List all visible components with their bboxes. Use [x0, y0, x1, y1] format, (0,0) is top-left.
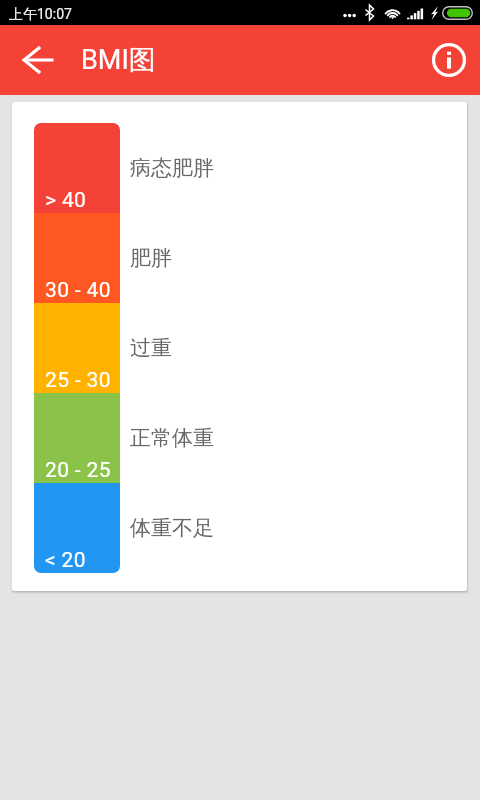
staticText: 上午10:07	[9, 6, 72, 24]
staticText: 20 - 25	[45, 458, 111, 483]
staticText: 肥胖	[130, 245, 172, 271]
staticText: 病态肥胖	[130, 155, 214, 181]
staticText: BMI图	[81, 43, 156, 77]
staticText: 过重	[130, 335, 172, 361]
staticText: 正常体重	[130, 425, 214, 451]
staticText: < 20	[45, 548, 86, 573]
staticText: 30 - 40	[45, 278, 111, 303]
button[interactable]: Back	[6, 31, 72, 89]
staticText: 25 - 30	[45, 368, 111, 393]
button[interactable]: Info	[425, 32, 473, 88]
staticText: > 40	[45, 188, 87, 213]
staticText: 体重不足	[130, 515, 214, 541]
